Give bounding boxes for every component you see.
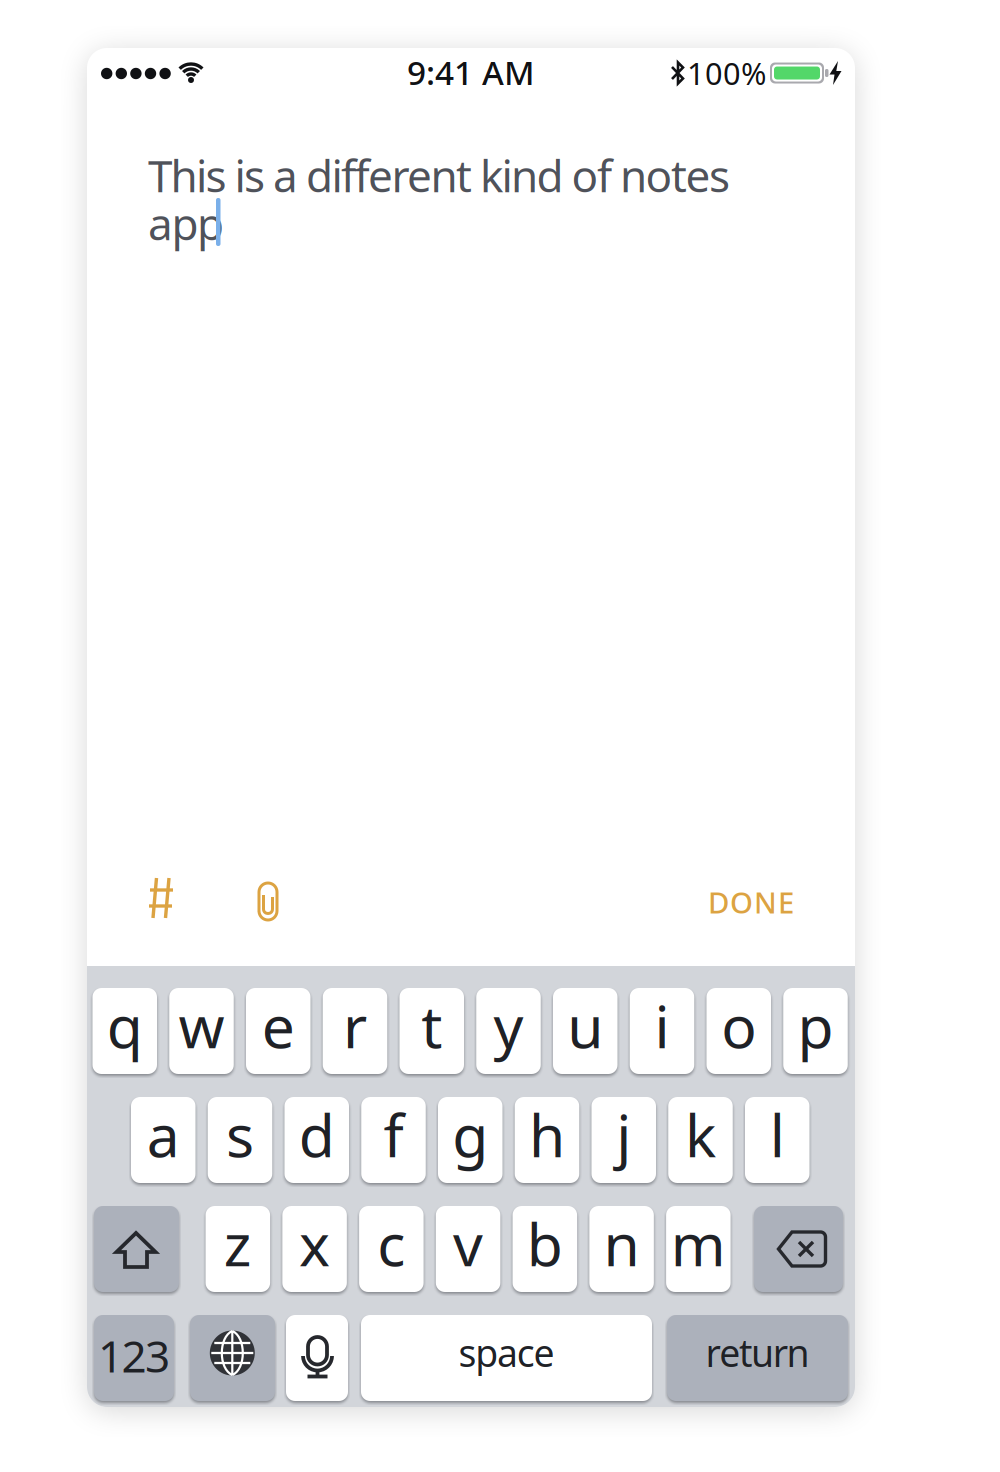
button[interactable]: x <box>282 1206 347 1292</box>
button[interactable]: h <box>515 1097 579 1183</box>
button[interactable]: r <box>323 988 387 1074</box>
staticText: l <box>770 1095 785 1173</box>
staticText: b <box>527 1204 563 1282</box>
button[interactable]: u <box>553 988 617 1074</box>
button[interactable]: e <box>246 988 310 1074</box>
staticText: z <box>224 1204 252 1282</box>
staticText: u <box>567 986 603 1064</box>
staticText: q <box>107 986 143 1064</box>
button[interactable]: DONE <box>634 882 794 922</box>
button[interactable]: b <box>513 1206 577 1292</box>
button[interactable]: o <box>706 988 771 1074</box>
button[interactable] <box>286 1315 348 1401</box>
button[interactable] <box>94 1206 179 1292</box>
button[interactable]: t <box>399 988 464 1074</box>
button[interactable] <box>754 1206 843 1292</box>
staticText: t <box>421 986 442 1064</box>
staticText: y <box>493 986 523 1064</box>
button[interactable]: g <box>438 1097 502 1183</box>
staticText: 100% <box>687 53 766 93</box>
staticText: n <box>604 1204 640 1282</box>
staticText: v <box>453 1204 483 1282</box>
button[interactable] <box>246 878 290 922</box>
button[interactable]: z <box>206 1206 270 1292</box>
staticText: This is a different kind of notes <box>148 146 730 204</box>
button[interactable]: w <box>169 988 234 1074</box>
button[interactable]: return <box>667 1315 848 1401</box>
staticText: x <box>299 1204 330 1282</box>
staticText: o <box>721 986 756 1064</box>
staticText: d <box>299 1095 335 1173</box>
staticText: i <box>654 986 669 1064</box>
staticText: 123 <box>98 1326 170 1385</box>
staticText: c <box>377 1204 405 1282</box>
button[interactable]: k <box>668 1097 733 1183</box>
staticText: a <box>147 1095 180 1173</box>
button[interactable]: v <box>436 1206 500 1292</box>
staticText: 9:41 AM <box>407 50 535 94</box>
button[interactable]: s <box>208 1097 272 1183</box>
button[interactable]: j <box>591 1097 656 1183</box>
button[interactable]: space <box>361 1315 652 1401</box>
staticText: DONE <box>708 882 794 921</box>
staticText: h <box>529 1095 565 1173</box>
button[interactable] <box>190 1315 275 1401</box>
staticText: p <box>797 986 833 1064</box>
staticText: w <box>178 986 224 1064</box>
button[interactable]: l <box>745 1097 809 1183</box>
button[interactable]: y <box>476 988 541 1074</box>
button[interactable]: f <box>361 1097 426 1183</box>
staticText: m <box>671 1204 726 1282</box>
staticText: j <box>616 1095 631 1173</box>
button[interactable]: n <box>589 1206 654 1292</box>
button[interactable]: i <box>630 988 694 1074</box>
button[interactable]: d <box>284 1097 349 1183</box>
button[interactable]: c <box>359 1206 424 1292</box>
staticText: app <box>148 194 224 252</box>
staticText: k <box>685 1095 716 1173</box>
button[interactable]: a <box>131 1097 195 1183</box>
button[interactable]: q <box>92 988 157 1074</box>
staticText: s <box>226 1095 254 1173</box>
staticText: return <box>705 1328 809 1377</box>
button[interactable] <box>139 878 183 922</box>
staticText: f <box>383 1095 403 1173</box>
button[interactable]: p <box>783 988 848 1074</box>
staticText: e <box>262 986 295 1064</box>
staticText: space <box>458 1328 555 1377</box>
staticText: g <box>452 1095 488 1173</box>
button[interactable]: 123 <box>94 1315 174 1401</box>
button[interactable]: m <box>666 1206 731 1292</box>
staticText: r <box>343 986 367 1064</box>
